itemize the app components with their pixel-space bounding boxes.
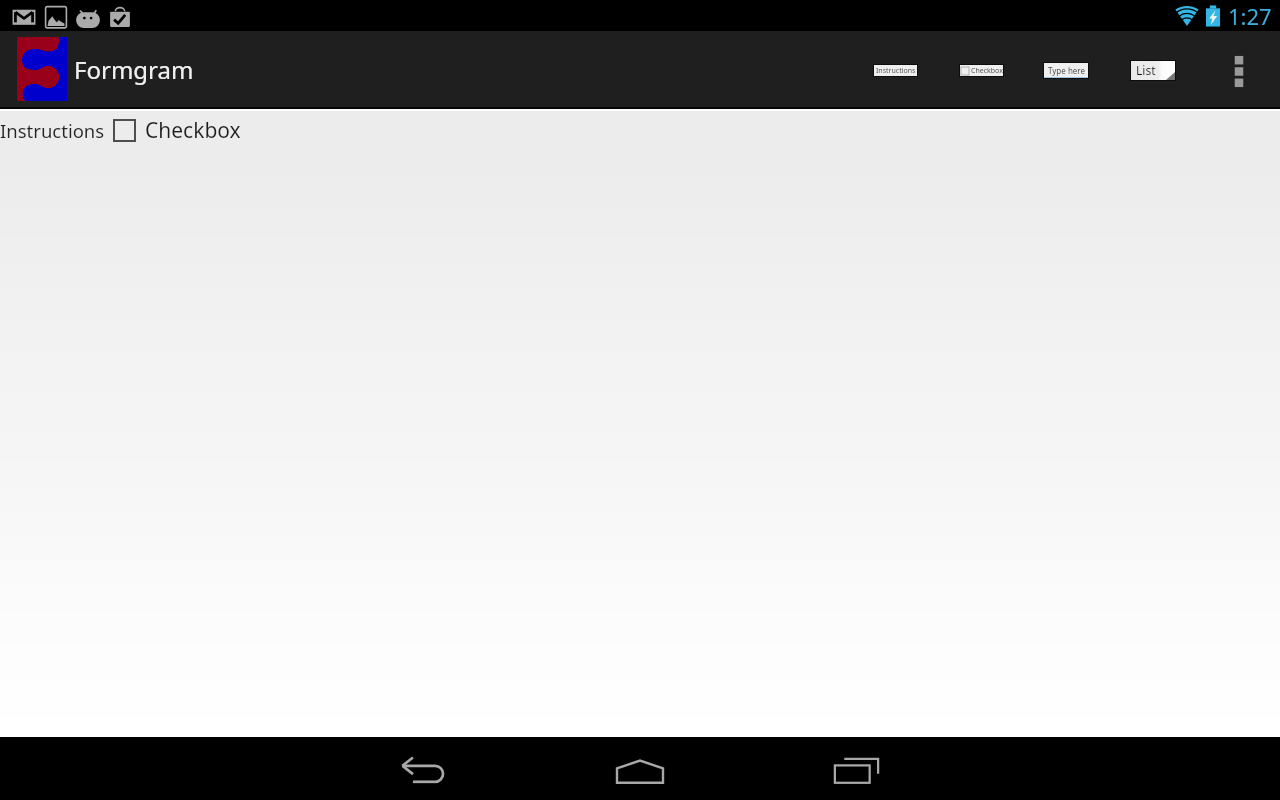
staticText: Checkbox <box>971 66 1003 76</box>
button[interactable]: Checkbox <box>959 64 1004 77</box>
staticText: List <box>1136 62 1156 78</box>
staticText: Instructions <box>876 66 916 76</box>
button[interactable]: Instructions <box>873 64 918 77</box>
button[interactable]: Recent apps <box>748 737 964 800</box>
staticText: Instructions <box>0 118 105 143</box>
button[interactable]: Back <box>316 737 532 800</box>
staticText: 1:27 <box>1228 1 1272 31</box>
button[interactable]: Checkbox <box>113 116 241 145</box>
button[interactable]: More options <box>1210 31 1268 111</box>
button[interactable]: Type here <box>1043 62 1089 79</box>
staticText: Formgram <box>74 53 194 86</box>
staticText: Type here <box>1048 65 1085 76</box>
button[interactable]: List <box>1130 60 1176 81</box>
button[interactable]: Home <box>532 737 748 800</box>
staticText: Checkbox <box>145 116 241 145</box>
